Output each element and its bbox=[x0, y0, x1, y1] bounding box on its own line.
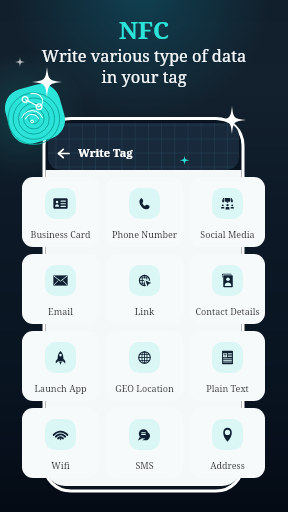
button[interactable]: Contact Details bbox=[190, 254, 265, 324]
staticText: Write Tag bbox=[78, 145, 133, 160]
button[interactable]: Email bbox=[22, 254, 99, 324]
button[interactable]: Business Card bbox=[22, 177, 99, 247]
button[interactable]: Back bbox=[53, 143, 73, 163]
staticText: Plain Text bbox=[190, 382, 265, 394]
staticText: GEO Location bbox=[106, 382, 183, 394]
staticText: SMS bbox=[106, 459, 183, 471]
staticText: Address bbox=[190, 459, 265, 471]
staticText: Wifi bbox=[22, 459, 99, 471]
staticText: Email bbox=[22, 305, 99, 317]
button[interactable]: GEO Location bbox=[106, 331, 183, 401]
staticText: Write various type of data in your tag bbox=[0, 44, 288, 88]
staticText: Contact Details bbox=[190, 305, 265, 317]
staticText: Link bbox=[106, 305, 183, 317]
staticText: NFC bbox=[0, 13, 288, 46]
button[interactable]: Launch App bbox=[22, 331, 99, 401]
button[interactable]: Phone Number bbox=[106, 177, 183, 247]
button[interactable]: Wifi bbox=[22, 408, 99, 478]
staticText: Business Card bbox=[22, 228, 99, 240]
button[interactable]: Address bbox=[190, 408, 265, 478]
button[interactable]: SMS bbox=[106, 408, 183, 478]
button[interactable]: Plain Text bbox=[190, 331, 265, 401]
button[interactable]: Link bbox=[106, 254, 183, 324]
staticText: Social Media bbox=[190, 228, 265, 240]
staticText: Phone Number bbox=[106, 228, 183, 240]
button[interactable]: Social Media bbox=[190, 177, 265, 247]
staticText: Launch App bbox=[22, 382, 99, 394]
